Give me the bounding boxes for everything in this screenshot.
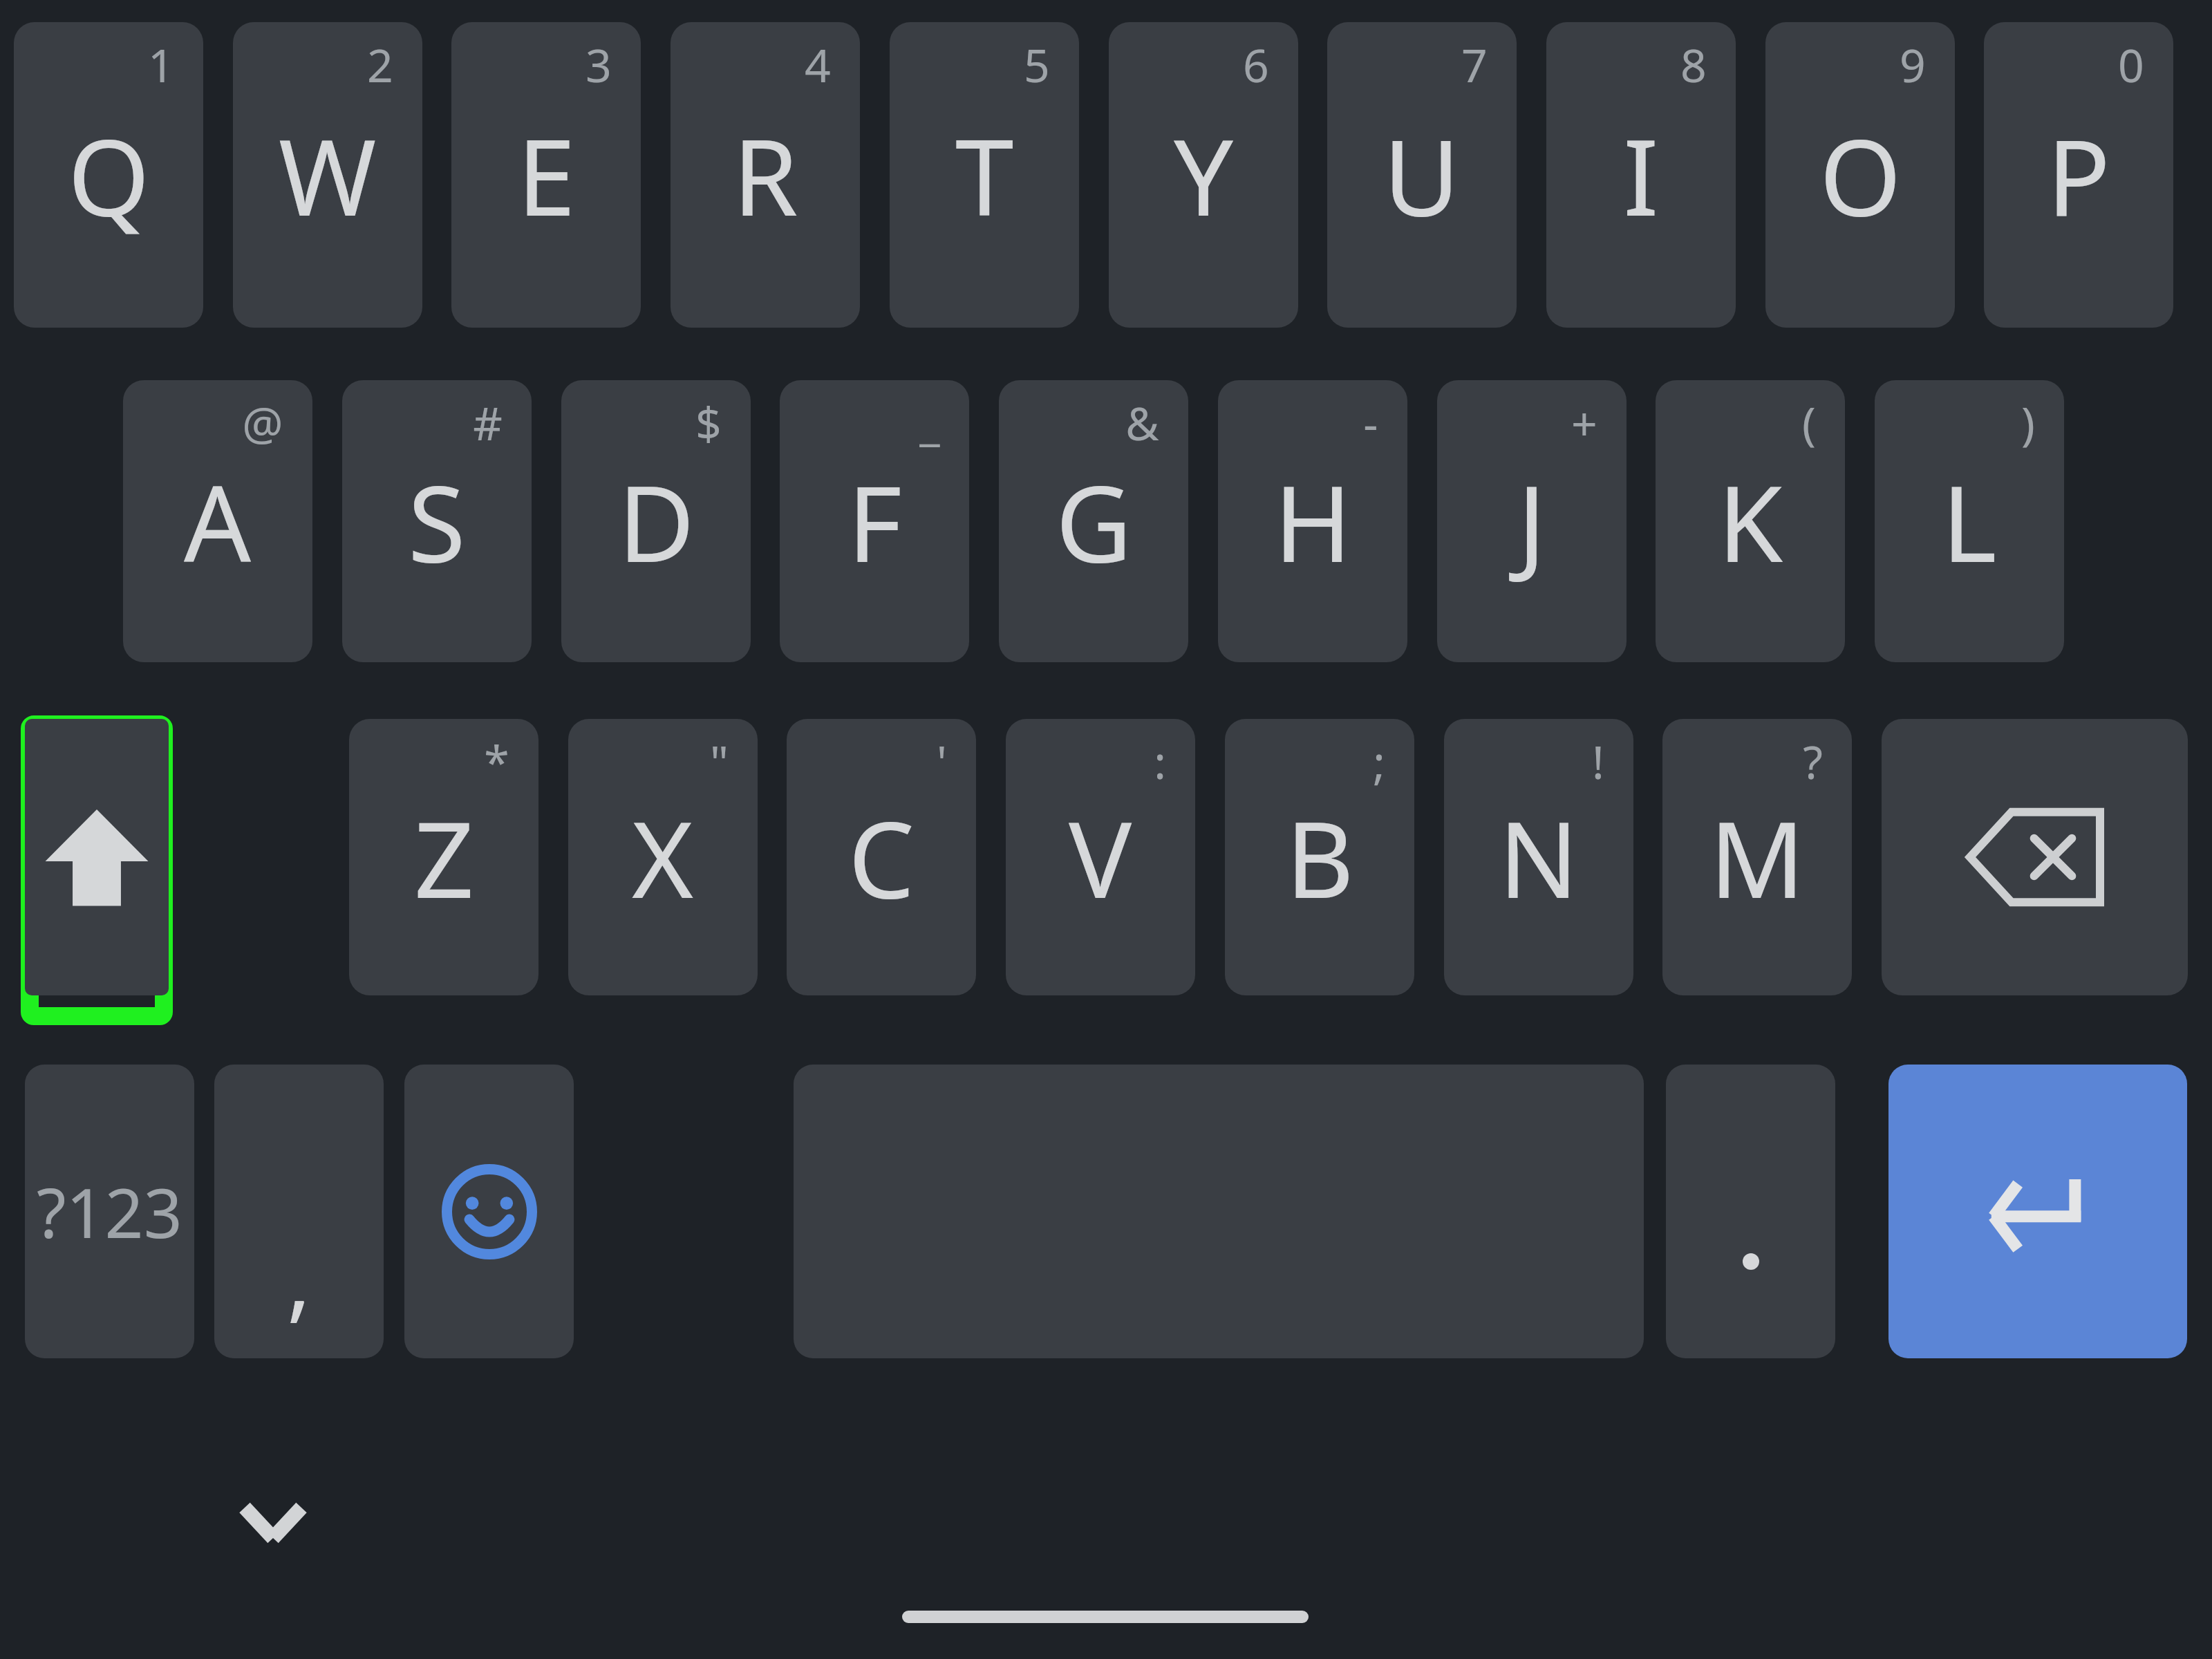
button[interactable]: Period [1666, 1065, 1835, 1358]
staticText: Z [414, 786, 474, 929]
button[interactable]: * [349, 719, 538, 995]
staticText: C [848, 786, 915, 929]
button[interactable]: # [342, 380, 532, 662]
button[interactable]: + [1437, 380, 1627, 662]
button[interactable]: 1 [14, 22, 203, 328]
staticText: E [517, 104, 576, 247]
staticText: 3 [585, 33, 612, 95]
button[interactable]: 9 [1765, 22, 1955, 328]
staticText: G [1056, 450, 1132, 593]
button[interactable]: ; [1225, 719, 1414, 995]
staticText: - [1363, 391, 1378, 453]
button[interactable]: ) [1875, 380, 2064, 662]
staticText: B [1286, 786, 1354, 929]
staticText: H [1274, 450, 1352, 593]
staticText: 9 [1900, 33, 1926, 95]
staticText: # [473, 391, 503, 453]
staticText: S [408, 450, 466, 593]
button[interactable]: ! [1444, 719, 1633, 995]
staticText: + [1571, 391, 1597, 453]
staticText: & [1125, 391, 1159, 453]
staticText: A [184, 450, 252, 593]
staticText: F [847, 450, 902, 593]
button[interactable]: 2 [233, 22, 422, 328]
staticText: ?123 [37, 1165, 182, 1257]
button[interactable]: $ [561, 380, 751, 662]
staticText: 2 [367, 33, 393, 95]
staticText: 8 [1680, 33, 1707, 95]
button[interactable]: @ [123, 380, 312, 662]
button[interactable]: 8 [1546, 22, 1736, 328]
staticText: T [955, 104, 1014, 247]
staticText: Q [68, 104, 150, 247]
staticText: J [1517, 450, 1546, 593]
staticText: M [1709, 786, 1805, 929]
staticText: 0 [2118, 33, 2144, 95]
staticText: ? [1803, 730, 1823, 792]
staticText: O [1819, 104, 1902, 247]
staticText: $ [695, 391, 722, 453]
staticText: X [632, 786, 694, 929]
staticText: " [710, 730, 729, 792]
staticText: I [1623, 104, 1659, 247]
staticText: K [1718, 450, 1783, 593]
button[interactable]: Comma [214, 1065, 384, 1358]
button[interactable]: : [1006, 719, 1195, 995]
staticText: W [279, 104, 377, 247]
button[interactable]: Hide keyboard [211, 1469, 335, 1576]
staticText: _ [919, 391, 940, 453]
button[interactable]: Emoji [404, 1065, 574, 1358]
button[interactable]: 6 [1109, 22, 1298, 328]
button[interactable]: Shift [25, 719, 169, 995]
button[interactable]: Enter [1888, 1065, 2187, 1358]
staticText: ( [1802, 391, 1816, 453]
button[interactable]: - [1218, 380, 1407, 662]
button[interactable]: 4 [671, 22, 860, 328]
staticText: 4 [805, 33, 831, 95]
staticText: N [1499, 786, 1579, 929]
staticText: U [1383, 104, 1461, 247]
staticText: L [1942, 450, 1997, 593]
staticText: @ [242, 391, 283, 453]
button[interactable]: 7 [1327, 22, 1517, 328]
staticText: ) [2021, 391, 2035, 453]
button[interactable]: 5 [890, 22, 1079, 328]
button[interactable]: ( [1656, 380, 1845, 662]
staticText: 1 [148, 33, 174, 95]
button[interactable]: & [999, 380, 1188, 662]
staticText: 5 [1024, 33, 1050, 95]
staticText: ' [937, 730, 947, 792]
staticText: 6 [1243, 33, 1269, 95]
button[interactable]: _ [780, 380, 969, 662]
staticText: : [1154, 730, 1166, 792]
staticText: , [287, 1215, 311, 1338]
staticText: ; [1373, 730, 1385, 792]
staticText: * [484, 730, 509, 792]
button[interactable]: 0 [1984, 22, 2173, 328]
staticText: D [618, 450, 695, 593]
button[interactable]: ' [787, 719, 976, 995]
button[interactable]: ?123 [25, 1065, 194, 1358]
button[interactable]: 3 [451, 22, 641, 328]
staticText: Y [1174, 104, 1234, 247]
button[interactable]: Backspace [1882, 719, 2188, 995]
staticText: V [1069, 786, 1132, 929]
button[interactable]: ? [1662, 719, 1852, 995]
staticText: P [2047, 104, 2110, 247]
staticText: ! [1592, 730, 1604, 792]
button[interactable]: " [568, 719, 758, 995]
staticText: 7 [1461, 33, 1488, 95]
staticText: R [733, 104, 798, 247]
